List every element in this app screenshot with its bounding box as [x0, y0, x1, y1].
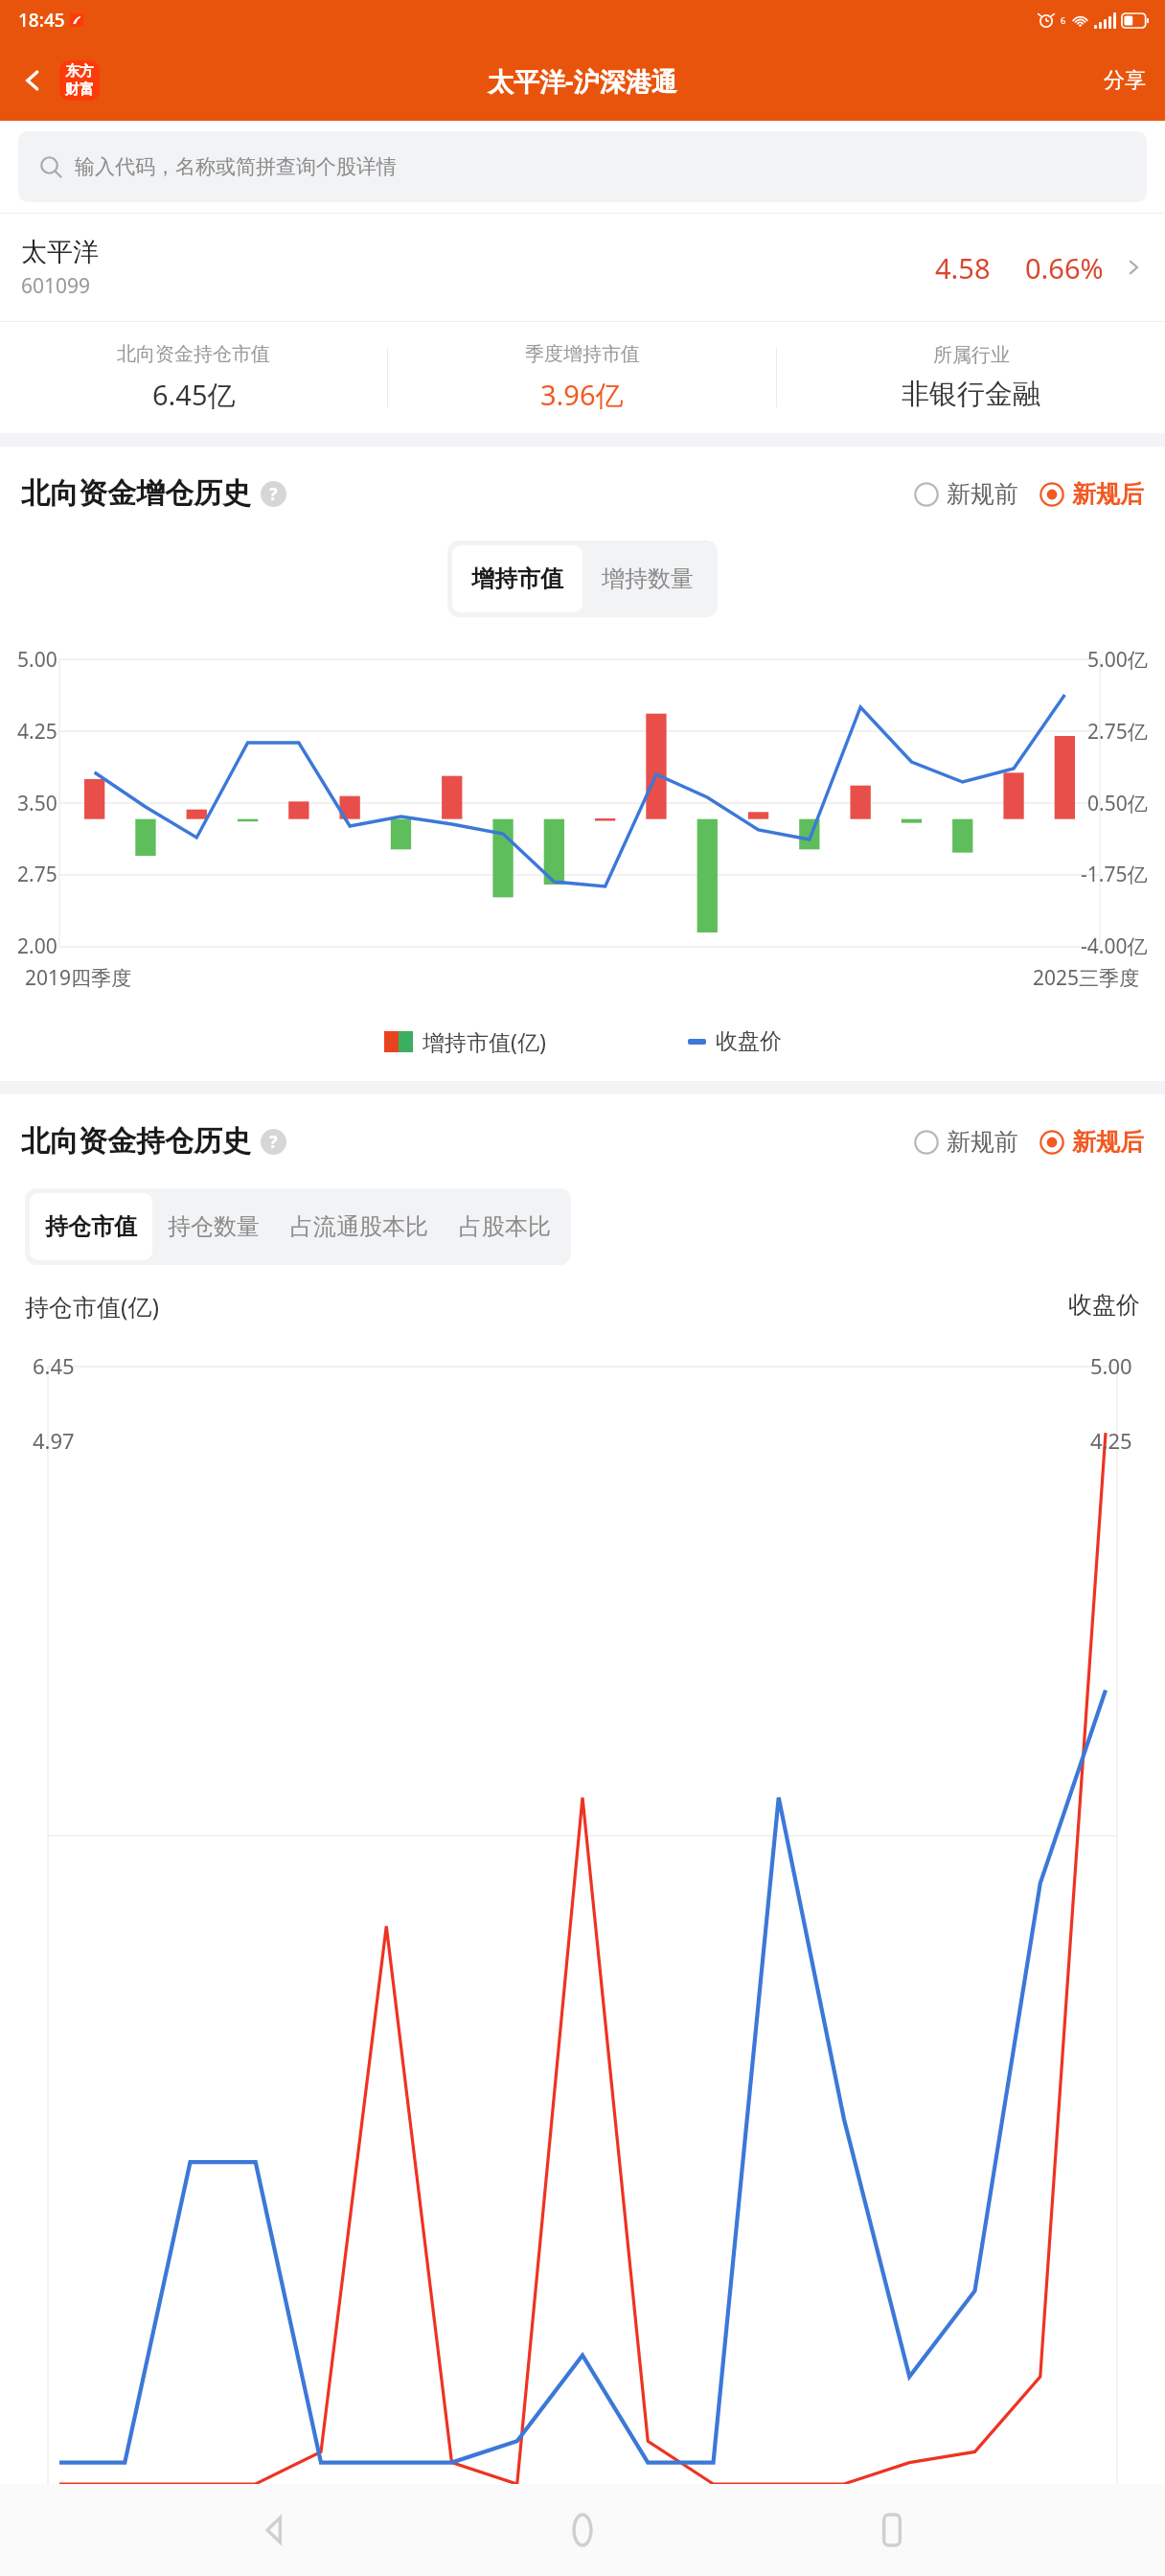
button[interactable]: 北向资金持仓市值 [0, 336, 387, 420]
staticText: 601099 [21, 272, 91, 300]
button[interactable]: 说明 [261, 1129, 286, 1155]
staticText: 4.97 [33, 1426, 75, 1455]
staticText: 3.50 [17, 790, 57, 817]
staticText: 持仓市值(亿) [25, 1290, 160, 1322]
staticText: 6.45亿 [152, 376, 236, 414]
staticText: 2025三季度 [1033, 964, 1140, 992]
button[interactable]: 新规前 [914, 473, 1018, 515]
staticText: 非银行金融 [902, 377, 1040, 412]
staticText: 3.96亿 [540, 376, 624, 414]
staticText: 6.45 [33, 1351, 75, 1380]
staticText: 东方 [65, 62, 94, 80]
button[interactable]: 占流通股本比 [275, 1193, 444, 1260]
staticText: 持仓数量 [168, 1212, 260, 1241]
button[interactable]: 返回 [8, 56, 57, 105]
staticText: 持仓市值 [45, 1212, 137, 1241]
staticText: 6 [1061, 14, 1066, 26]
staticText: ? [269, 1130, 278, 1154]
staticText: -1.75亿 [1081, 861, 1148, 888]
staticText: -4.00亿 [1081, 932, 1148, 960]
staticText: 增持数量 [602, 564, 694, 593]
staticText: 4.25 [17, 718, 57, 746]
staticText: 4.58 [935, 249, 991, 287]
staticText: 新规前 [947, 1127, 1018, 1157]
button[interactable]: 占股本比 [444, 1193, 566, 1260]
button[interactable]: 所属行业 [777, 337, 1165, 418]
button[interactable]: 增持市值 [452, 545, 582, 612]
staticText: 新规后 [1072, 1127, 1144, 1157]
staticText: 5.00 [17, 646, 57, 674]
staticText: 占流通股本比 [290, 1212, 428, 1241]
staticText: 北向资金持仓市值 [117, 342, 270, 366]
staticText: 收盘价 [1068, 1290, 1140, 1320]
staticText: 财富 [65, 80, 94, 99]
staticText: 2.75亿 [1087, 718, 1148, 746]
button[interactable]: 返回 [239, 2495, 309, 2565]
staticText: 2.75 [17, 861, 57, 888]
button[interactable]: 太平洋 [0, 214, 1165, 321]
button[interactable]: 输入代码，名称或简拼查询个股详情 [18, 131, 1147, 202]
button[interactable]: 东方财富 [59, 60, 100, 101]
staticText: 2019四季度 [25, 964, 132, 992]
button[interactable]: 持仓数量 [152, 1193, 275, 1260]
staticText: ? [269, 482, 278, 506]
button[interactable]: 新规后 [1039, 473, 1144, 515]
staticText: 太平洋 [21, 236, 99, 268]
staticText: 占股本比 [459, 1212, 551, 1241]
staticText: 收盘价 [716, 1027, 782, 1055]
staticText: 新规后 [1072, 479, 1144, 509]
staticText: 分享 [1104, 67, 1146, 94]
button[interactable]: 季度增持市值 [388, 336, 776, 420]
button[interactable]: 说明 [261, 481, 286, 507]
staticText: 0.66% [1025, 249, 1104, 287]
staticText: 5.00亿 [1087, 646, 1148, 674]
button[interactable]: 新规前 [914, 1121, 1018, 1162]
staticText: 5.00 [1090, 1351, 1132, 1380]
button[interactable]: 增持数量 [582, 545, 713, 612]
staticText: 增持市值 [471, 564, 563, 593]
button[interactable]: 持仓市值 [30, 1193, 152, 1260]
staticText: 太平洋-沪深港通 [488, 63, 677, 99]
staticText: 所属行业 [933, 343, 1010, 367]
button[interactable]: 分享 [1085, 56, 1165, 105]
staticText: 4.25 [1090, 1426, 1132, 1455]
staticText: 季度增持市值 [525, 342, 640, 366]
staticText: 新规前 [947, 479, 1018, 509]
button[interactable]: 主页 [547, 2495, 618, 2565]
staticText: 0.50亿 [1087, 790, 1148, 817]
button[interactable]: 最近任务 [857, 2495, 927, 2565]
staticText: 输入代码，名称或简拼查询个股详情 [75, 154, 397, 179]
staticText: 北向资金持仓历史 [21, 1123, 251, 1160]
staticText: 2.00 [17, 932, 57, 960]
staticText: 增持市值(亿) [423, 1026, 546, 1056]
button[interactable]: 新规后 [1039, 1121, 1144, 1162]
staticText: 北向资金增仓历史 [21, 475, 251, 512]
staticText: 18:45 [18, 8, 65, 33]
